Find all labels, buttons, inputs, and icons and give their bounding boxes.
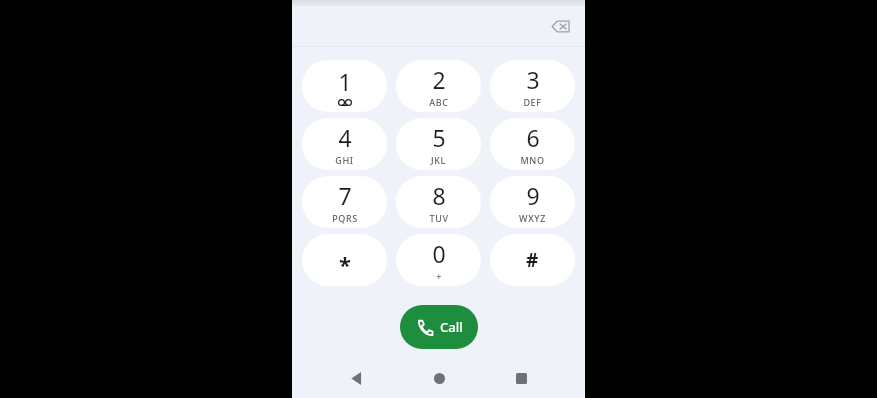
staticText: 9 [526,180,540,211]
button[interactable]: 9 [490,176,575,228]
staticText: 0 [432,238,446,269]
button[interactable]: 0 [396,234,481,286]
button[interactable]: # [490,234,575,286]
button[interactable]: 5 [396,118,481,170]
staticText: 8 [432,180,446,211]
staticText: WXYZ [519,212,546,224]
staticText: ABC [429,96,449,108]
button[interactable]: Call [400,305,478,349]
button[interactable]: Back [337,359,375,397]
staticText: 5 [432,122,446,153]
staticText: 2 [432,64,446,95]
staticText: + [436,270,442,282]
staticText: * [339,249,351,279]
staticText: 4 [338,122,352,153]
button[interactable]: Home [420,359,458,397]
staticText: GHI [335,154,354,166]
staticText: 7 [338,180,352,211]
staticText: 3 [526,64,540,95]
button[interactable]: 4 [302,118,387,170]
staticText: 6 [526,122,540,153]
button[interactable]: 1 [302,60,387,112]
staticText: Call [440,318,463,336]
button[interactable]: 3 [490,60,575,112]
staticText: TUV [429,212,449,224]
button[interactable]: 7 [302,176,387,228]
staticText: PQRS [332,212,358,224]
staticText: # [526,247,539,273]
staticText: JKL [431,154,446,166]
button[interactable]: Backspace [543,9,577,43]
staticText: MNO [520,154,545,166]
staticText: 1 [338,66,352,97]
button[interactable]: * [302,234,387,286]
button[interactable]: 8 [396,176,481,228]
staticText: DEF [523,96,542,108]
button[interactable]: 2 [396,60,481,112]
button[interactable]: Recents [502,359,540,397]
button[interactable]: 6 [490,118,575,170]
